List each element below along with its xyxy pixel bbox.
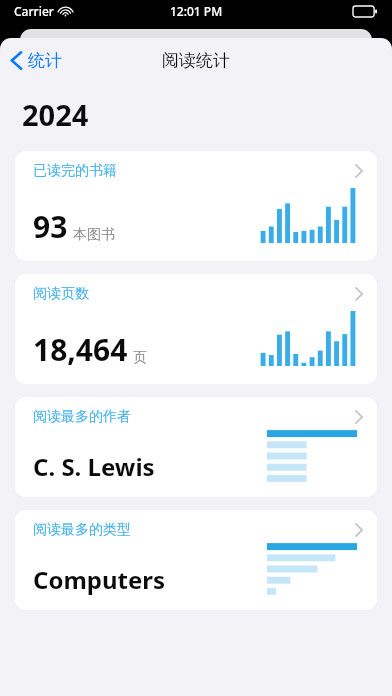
staticText: 阅读最多的作者 <box>33 408 131 426</box>
staticText: 93 <box>33 206 68 247</box>
staticText: 统计 <box>28 50 62 71</box>
staticText: Computers <box>33 563 166 596</box>
staticText: 页 <box>133 349 147 367</box>
staticText: 12:01 PM <box>170 3 223 19</box>
staticText: C. S. Lewis <box>33 450 155 483</box>
staticText: 阅读统计 <box>162 50 230 71</box>
button[interactable]: 阅读最多的作者 <box>15 397 377 497</box>
staticText: Carrier <box>14 3 54 19</box>
staticText: 2024 <box>22 95 89 134</box>
staticText: 本图书 <box>73 226 115 244</box>
staticText: 阅读页数 <box>33 285 89 303</box>
staticText: 已读完的书籍 <box>33 162 117 180</box>
other: Back <box>11 51 22 70</box>
staticText: 18,464 <box>33 329 128 370</box>
button[interactable]: 阅读最多的类型 <box>15 510 377 610</box>
button[interactable]: 已读完的书籍 <box>15 151 377 261</box>
button[interactable]: 阅读页数 <box>15 274 377 384</box>
staticText: 阅读最多的类型 <box>33 521 131 539</box>
button[interactable]: Back <box>0 44 72 77</box>
